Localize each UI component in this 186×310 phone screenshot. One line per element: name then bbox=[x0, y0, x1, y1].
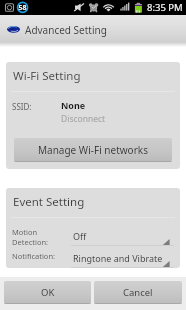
staticText: Cancel bbox=[123, 286, 153, 299]
staticText: OK bbox=[41, 286, 55, 299]
button[interactable]: Manage Wi-Fi networks bbox=[14, 138, 172, 162]
staticText: Wi-Fi Setting bbox=[13, 68, 81, 84]
staticText: Event Setting bbox=[13, 194, 85, 210]
button[interactable]: OK bbox=[4, 281, 91, 304]
staticText: None bbox=[61, 99, 86, 111]
staticText: Advanced Setting bbox=[25, 23, 107, 37]
button[interactable]: Cancel bbox=[94, 281, 182, 304]
staticText: Manage Wi-Fi networks bbox=[38, 143, 148, 157]
staticText: Disconnect bbox=[61, 113, 106, 125]
staticText: Notification: bbox=[12, 251, 56, 261]
staticText: 8:35 PM bbox=[147, 1, 183, 14]
staticText: 58 bbox=[18, 3, 27, 13]
button[interactable]: Off bbox=[65, 221, 174, 246]
staticText: Ringtone and Vibrate bbox=[73, 252, 163, 264]
staticText: Motion Detection: bbox=[12, 227, 49, 247]
button[interactable]: Advanced Setting bbox=[0, 15, 186, 42]
staticText: SSID: bbox=[12, 101, 32, 112]
staticText: Off bbox=[73, 230, 87, 242]
button[interactable]: Ringtone and Vibrate bbox=[65, 243, 174, 268]
